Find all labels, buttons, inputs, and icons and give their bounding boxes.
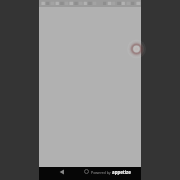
- button[interactable]: Home: [81, 165, 92, 178]
- button[interactable]: Back: [56, 165, 68, 178]
- staticText: Powered by: [91, 170, 112, 175]
- button[interactable]: Powered by appetize: [91, 169, 131, 175]
- staticText: appetize: [112, 169, 131, 175]
- other: Status bar: [39, 0, 141, 7]
